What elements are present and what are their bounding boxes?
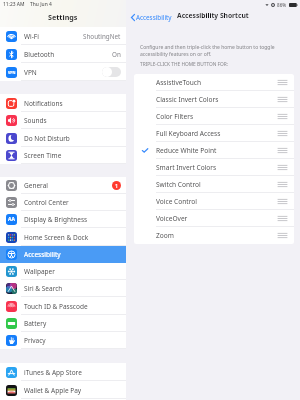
staticText: Display & Brightness (24, 215, 88, 224)
staticText: Touch ID & Passcode (24, 302, 88, 311)
staticText: AA (8, 216, 15, 223)
button[interactable]: Siri & Search (0, 280, 126, 297)
staticText: Configure and then triple-click the home… (140, 44, 280, 57)
button[interactable]: Classic Invert Colors (134, 91, 294, 108)
staticText: 11:23 AM (3, 1, 25, 8)
staticText: Thu Jun 4 (30, 1, 52, 8)
staticText: VPN (8, 70, 16, 75)
button[interactable]: Voice Control (134, 193, 294, 210)
button[interactable]: Notifications (0, 94, 126, 112)
staticText: TRIPLE-CLICK THE HOME BUTTON FOR: (140, 61, 229, 68)
button[interactable]: Zoom (134, 227, 294, 244)
button[interactable]: Home Screen & Dock (0, 229, 126, 246)
staticText: Do Not Disturb (24, 134, 70, 143)
button[interactable]: Wallet & Apple Pay (0, 381, 126, 399)
staticText: iTunes & App Store (24, 368, 82, 377)
staticText: Color Filters (156, 112, 194, 121)
staticText: 1 (115, 182, 119, 189)
button[interactable]: iTunes & App Store (0, 363, 126, 381)
button[interactable]: Control Center (0, 194, 126, 211)
button[interactable]: Reduce White Point (134, 142, 294, 159)
button[interactable]: Full Keyboard Access (134, 125, 294, 142)
staticText: VoiceOver (156, 214, 188, 223)
button[interactable]: Accessibility (130, 12, 173, 23)
button[interactable]: General (0, 177, 126, 194)
staticText: 86% (277, 2, 287, 8)
staticText: Screen Time (24, 151, 62, 160)
staticText: Wallpaper (24, 267, 55, 276)
button[interactable]: Switch Control (134, 176, 294, 193)
staticText: AssistiveTouch (156, 78, 202, 87)
button[interactable]: Smart Invert Colors (134, 159, 294, 176)
staticText: Classic Invert Colors (156, 95, 219, 104)
button[interactable]: Privacy (0, 332, 126, 349)
button[interactable]: Wallpaper (0, 263, 126, 280)
staticText: Bluetooth (24, 50, 55, 59)
button[interactable]: Color Filters (134, 108, 294, 125)
staticText: General (24, 181, 48, 190)
staticText: Control Center (24, 198, 69, 207)
staticText: Sounds (24, 116, 47, 125)
button[interactable]: Screen Time (0, 146, 126, 164)
button[interactable]: Bluetooth (0, 45, 126, 63)
button[interactable]: AssistiveTouch (134, 74, 294, 91)
staticText: ShoutingNet (83, 32, 121, 41)
button[interactable]: Touch ID & Passcode (0, 298, 126, 315)
staticText: Smart Invert Colors (156, 163, 217, 172)
staticText: Switch Control (156, 180, 201, 189)
staticText: On (112, 50, 121, 59)
staticText: Full Keyboard Access (156, 129, 221, 138)
button[interactable]: Battery (0, 315, 126, 332)
staticText: Reduce White Point (156, 146, 217, 155)
staticText: Settings (48, 12, 78, 22)
staticText: VPN (24, 68, 37, 77)
staticText: Wallet & Apple Pay (24, 386, 82, 395)
staticText: Privacy (24, 336, 46, 345)
button[interactable]: AA (0, 211, 126, 228)
button[interactable]: Accessibility (0, 246, 126, 263)
staticText: Zoom (156, 231, 174, 240)
staticText: Notifications (24, 99, 63, 108)
button[interactable]: VPN (0, 63, 126, 81)
button[interactable]: VoiceOver (134, 210, 294, 227)
button[interactable]: Wi-Fi (0, 27, 126, 45)
staticText: Accessibility (136, 13, 172, 22)
staticText: Battery (24, 319, 47, 328)
button[interactable]: Sounds (0, 111, 126, 129)
staticText: Wi-Fi (24, 32, 39, 41)
staticText: Accessibility Shortcut (177, 11, 249, 20)
staticText: Accessibility (24, 250, 61, 259)
staticText: Home Screen & Dock (24, 233, 89, 242)
staticText: Voice Control (156, 197, 198, 206)
staticText: Siri & Search (24, 284, 63, 293)
button[interactable]: Do Not Disturb (0, 129, 126, 147)
